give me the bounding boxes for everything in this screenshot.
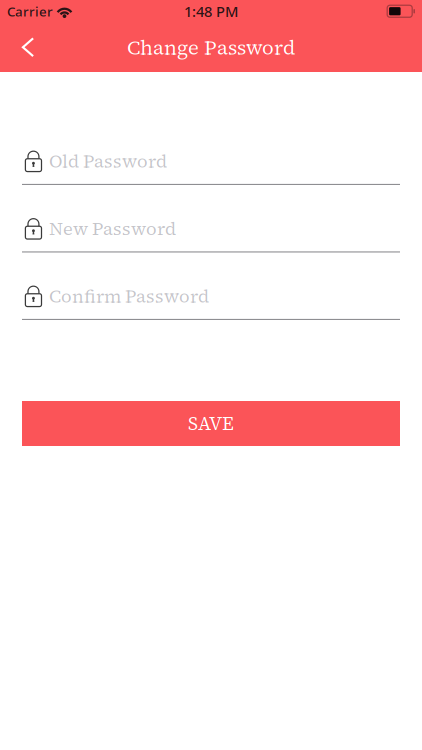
button[interactable]: Old Password: [22, 149, 400, 185]
button[interactable]: Confirm Password: [22, 284, 400, 320]
button[interactable]: SAVE: [22, 401, 400, 446]
staticText: New Password: [49, 216, 176, 241]
staticText: Confirm Password: [49, 283, 209, 308]
staticText: SAVE: [188, 411, 234, 436]
staticText: Change Password: [127, 33, 295, 61]
staticText: Carrier: [7, 2, 53, 20]
button[interactable]: New Password: [22, 216, 400, 252]
staticText: Old Password: [49, 148, 167, 173]
staticText: 1:48 PM: [184, 1, 238, 21]
button[interactable]: Back: [7, 25, 49, 69]
